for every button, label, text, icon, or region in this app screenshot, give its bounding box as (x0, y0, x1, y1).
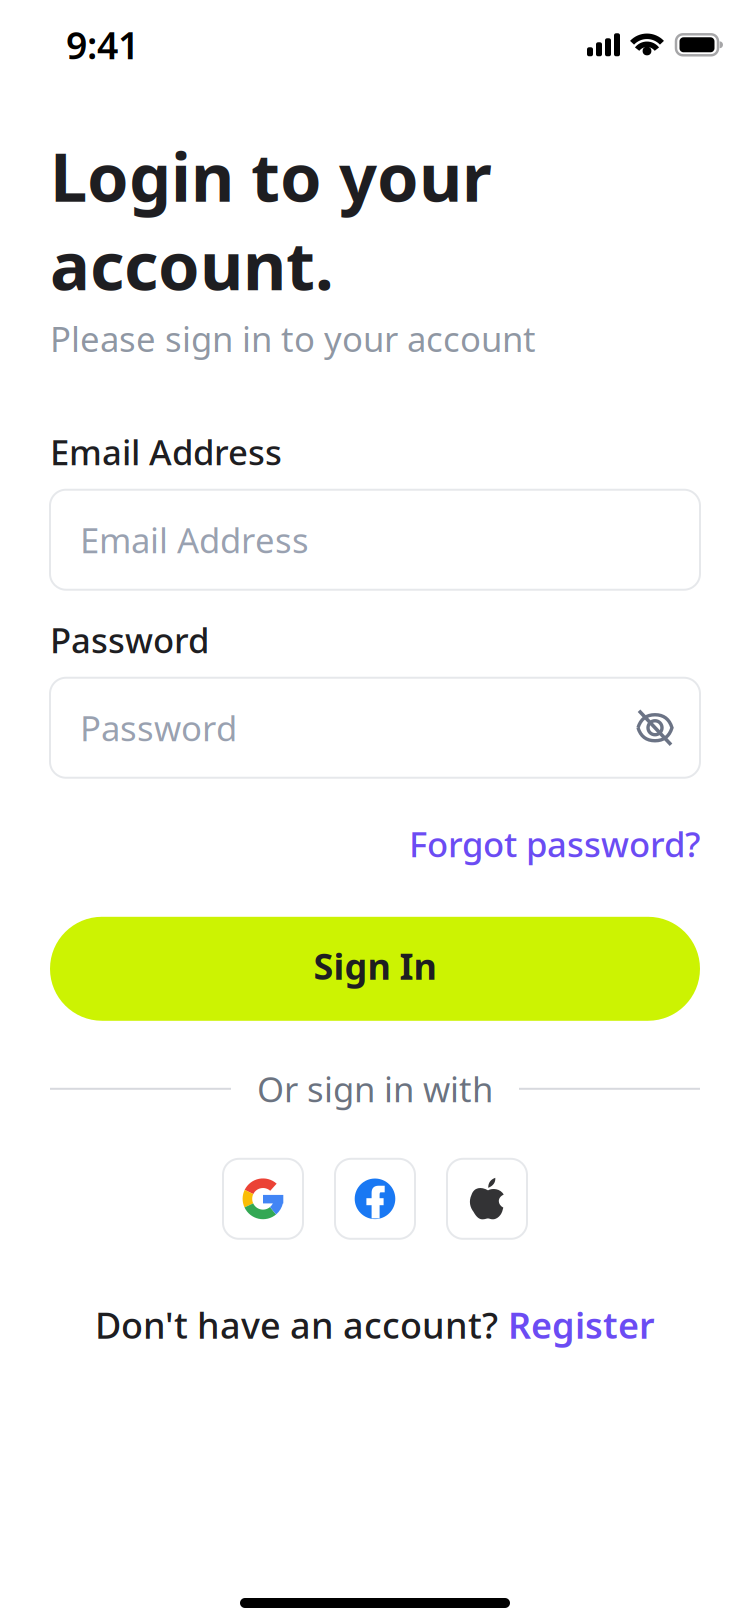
button[interactable]: Register (508, 1301, 655, 1349)
button[interactable] (223, 1159, 303, 1239)
staticText: Email Address (50, 429, 282, 475)
button[interactable]: Password (50, 678, 700, 778)
button[interactable]: Sign In (50, 917, 700, 1021)
staticText: Forgot password? (409, 821, 700, 867)
button[interactable]: Email Address (50, 490, 700, 590)
staticText: Login to your (50, 132, 492, 220)
staticText: Sign In (313, 942, 436, 990)
staticText: Password (50, 617, 209, 663)
staticText: 9:41 (66, 20, 139, 70)
staticText: Email Address (80, 517, 309, 563)
button[interactable] (335, 1159, 415, 1239)
staticText: account. (50, 220, 334, 309)
staticText: Register (508, 1301, 655, 1349)
staticText: Or sign in with (257, 1066, 493, 1112)
button[interactable] (447, 1159, 527, 1239)
staticText: Password (80, 705, 237, 751)
staticText: Don't have an account? (95, 1301, 498, 1349)
button[interactable]: Forgot password? (409, 821, 700, 867)
staticText: Please sign in to your account (50, 316, 536, 362)
